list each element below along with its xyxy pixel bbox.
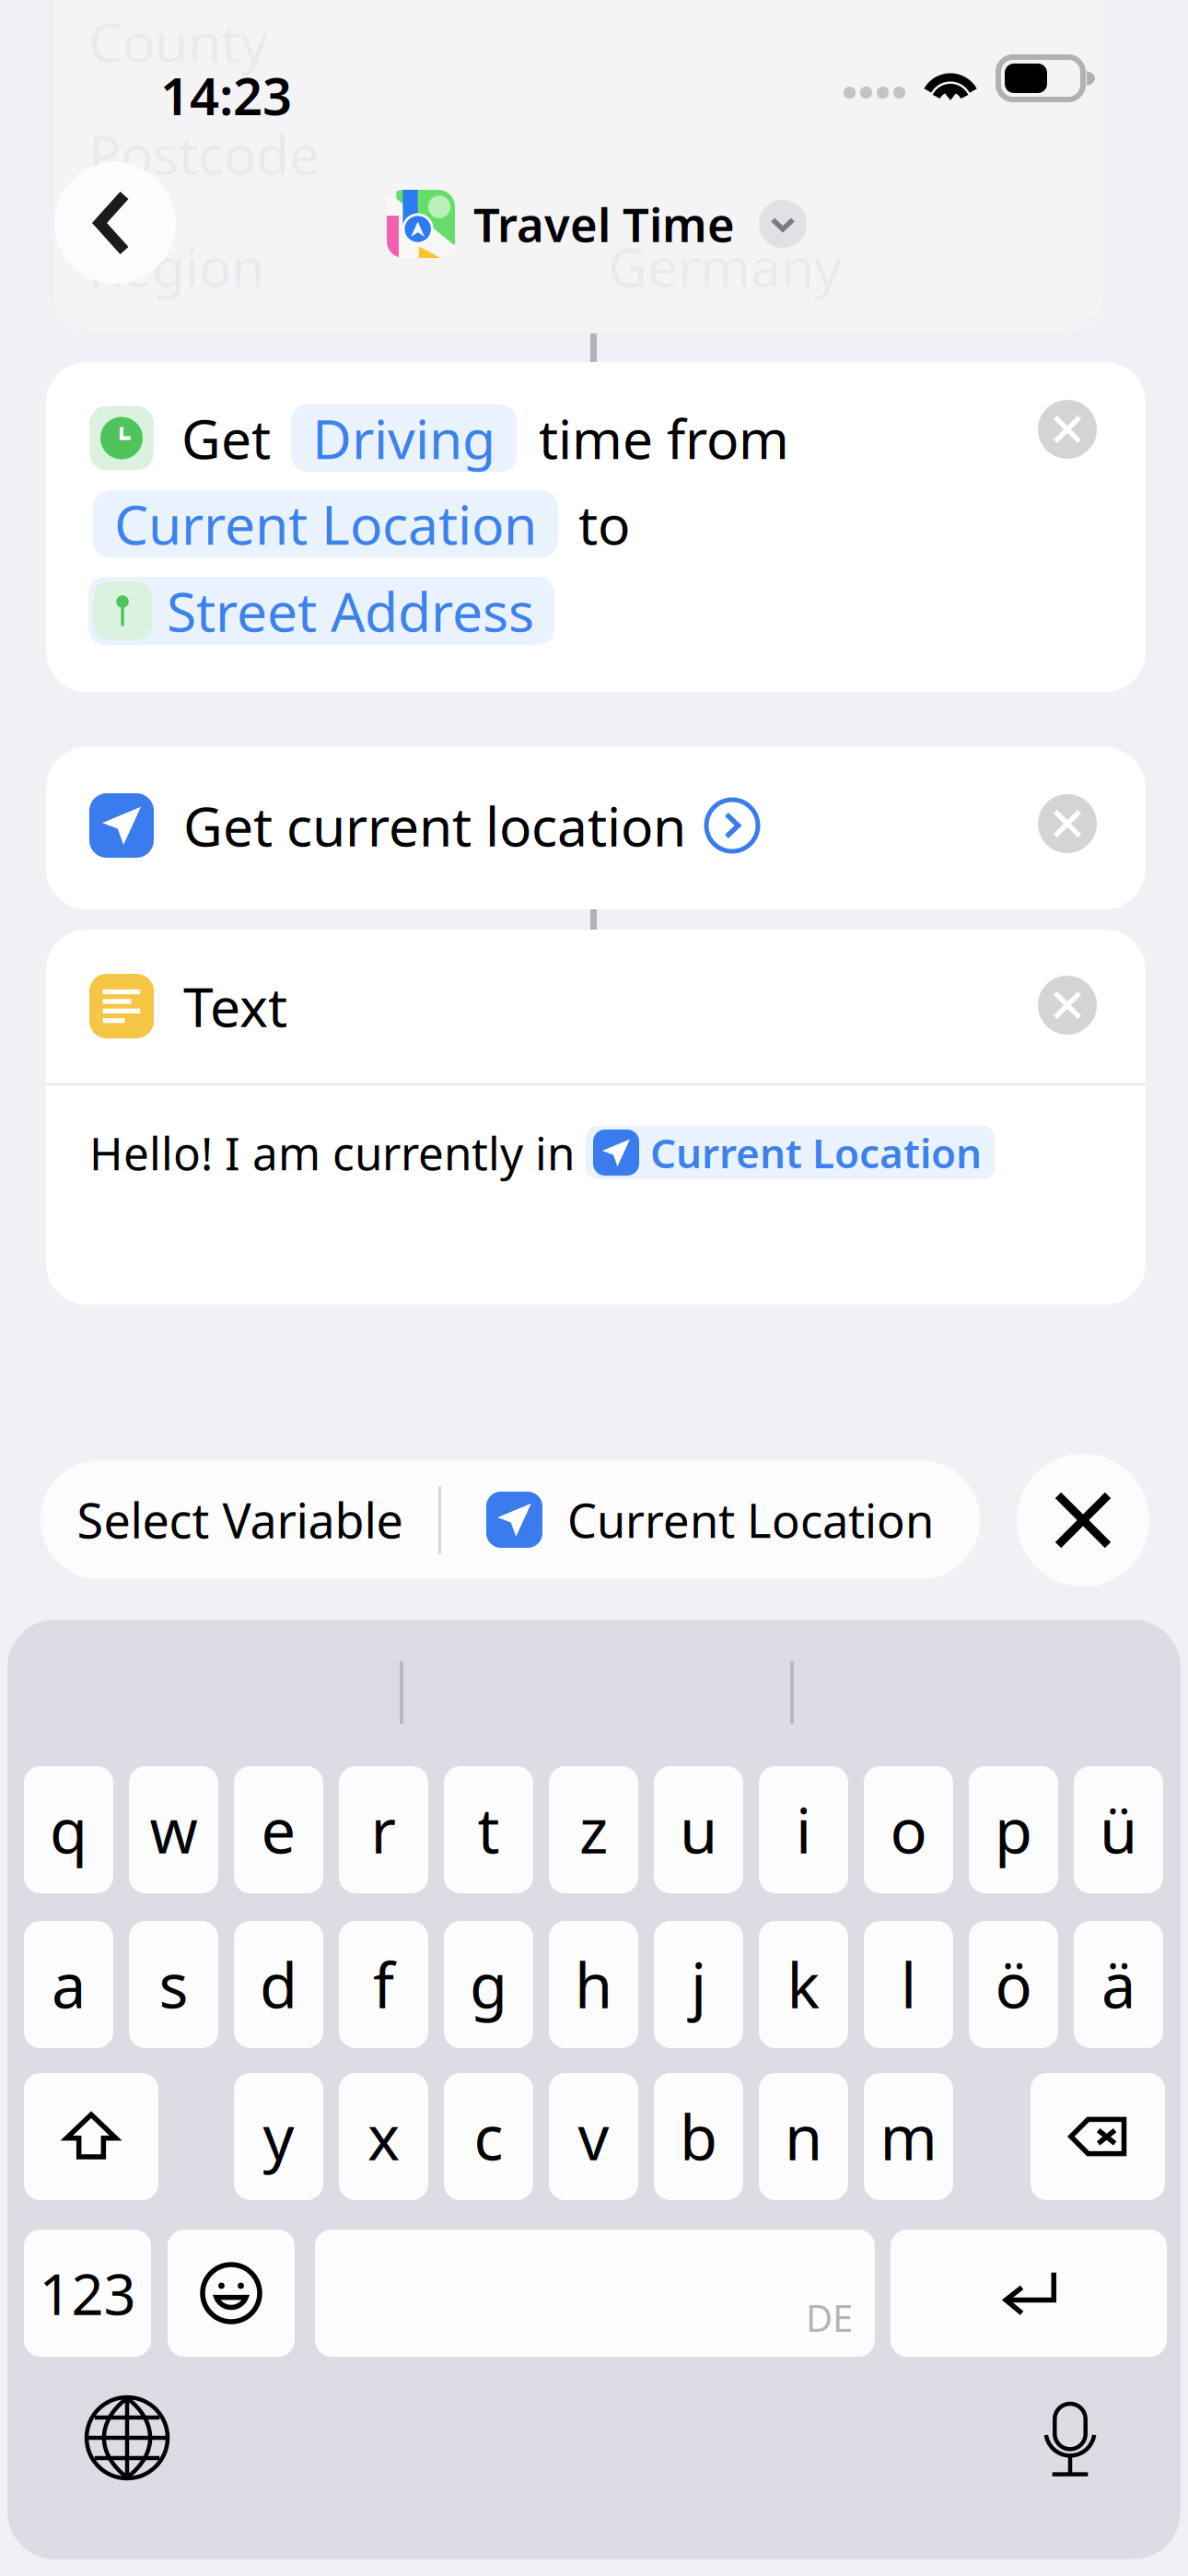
staticText: s — [159, 1944, 188, 2025]
staticText: r — [371, 1789, 396, 1870]
button[interactable]: Back — [54, 162, 176, 284]
button[interactable]: 123 — [24, 2230, 151, 2357]
button[interactable]: m — [864, 2073, 953, 2200]
button[interactable]: s — [129, 1921, 218, 2048]
staticText: Driving — [312, 402, 495, 474]
button[interactable]: Select Variable — [41, 1460, 439, 1579]
button[interactable]: Street Address — [88, 577, 554, 645]
button[interactable]: x — [339, 2073, 428, 2200]
staticText: w — [150, 1789, 198, 1870]
button[interactable]: Next keyboard — [81, 2392, 173, 2484]
button[interactable]: Shift — [24, 2073, 158, 2200]
staticText: z — [579, 1789, 608, 1870]
button[interactable]: Driving — [291, 404, 517, 472]
button[interactable]: b — [654, 2073, 743, 2200]
button[interactable]: Show action details — [706, 800, 758, 851]
staticText: ü — [1100, 1789, 1137, 1870]
staticText: u — [680, 1789, 717, 1870]
staticText: Current Location — [114, 488, 537, 560]
staticText: Get — [181, 402, 271, 474]
button[interactable]: j — [654, 1921, 743, 2048]
staticText: j — [691, 1944, 706, 2025]
button[interactable]: Dismiss keyboard — [1017, 1454, 1149, 1587]
staticText: 14:23 — [160, 61, 292, 129]
staticText: l — [901, 1944, 916, 2025]
button[interactable]: Dictate — [1024, 2392, 1116, 2484]
button[interactable]: ö — [969, 1921, 1058, 2048]
button[interactable]: r — [339, 1766, 428, 1893]
button[interactable]: Delete — [1031, 2073, 1165, 2200]
staticText: x — [367, 2096, 400, 2177]
button[interactable]: i — [759, 1766, 848, 1893]
staticText: to — [578, 488, 630, 560]
staticText: y — [263, 2096, 294, 2177]
staticText: Postcode — [88, 118, 320, 190]
button[interactable]: e — [234, 1766, 323, 1893]
button[interactable]: Remove Get current location action — [1038, 794, 1097, 853]
staticText: n — [785, 2096, 822, 2177]
staticText: time from — [539, 402, 789, 474]
button[interactable]: t — [444, 1766, 533, 1893]
button[interactable]: Space — [315, 2230, 875, 2357]
staticText: i — [796, 1789, 811, 1870]
staticText: Hello! I am currently in — [89, 1122, 575, 1183]
button[interactable]: Shortcut options — [759, 200, 807, 248]
staticText: k — [787, 1944, 820, 2025]
staticText: o — [890, 1789, 927, 1870]
button[interactable]: q — [24, 1766, 113, 1893]
staticText: Get current location — [183, 790, 686, 861]
staticText: ä — [1101, 1944, 1136, 2025]
staticText: v — [578, 2096, 609, 2177]
staticText: Text — [183, 970, 287, 1042]
staticText: d — [260, 1944, 297, 2025]
button[interactable]: Current Location — [93, 490, 558, 557]
button[interactable]: Remove Get travel time action — [1038, 400, 1097, 459]
staticText: c — [474, 2096, 503, 2177]
staticText: h — [575, 1944, 612, 2025]
staticText: m — [880, 2096, 937, 2177]
staticText: County — [88, 6, 268, 77]
staticText: t — [478, 1789, 500, 1870]
staticText: g — [470, 1944, 507, 2025]
staticText: Travel Time — [473, 193, 735, 255]
button[interactable]: ä — [1074, 1921, 1163, 2048]
button[interactable]: Remove Text action — [1038, 976, 1097, 1035]
button[interactable]: u — [654, 1766, 743, 1893]
button[interactable]: a — [24, 1921, 113, 2048]
button[interactable]: Emoji — [168, 2230, 295, 2357]
button[interactable]: k — [759, 1921, 848, 2048]
staticText: Germany — [608, 230, 842, 302]
button[interactable]: ü — [1074, 1766, 1163, 1893]
button[interactable]: d — [234, 1921, 323, 2048]
button[interactable]: g — [444, 1921, 533, 2048]
button[interactable]: n — [759, 2073, 848, 2200]
button[interactable]: l — [864, 1921, 953, 2048]
staticText: Select Variable — [77, 1488, 403, 1552]
staticText: b — [680, 2096, 717, 2177]
staticText: p — [995, 1789, 1032, 1870]
staticText: Street Address — [167, 575, 534, 647]
button[interactable]: y — [234, 2073, 323, 2200]
button[interactable]: f — [339, 1921, 428, 2048]
button[interactable]: c — [444, 2073, 533, 2200]
button[interactable]: z — [549, 1766, 638, 1893]
staticText: e — [261, 1789, 296, 1870]
staticText: DE — [806, 2293, 853, 2342]
button[interactable]: w — [129, 1766, 218, 1893]
button[interactable]: Current Location — [442, 1460, 981, 1579]
button[interactable]: o — [864, 1766, 953, 1893]
staticText: q — [50, 1789, 87, 1870]
staticText: Current Location — [650, 1126, 982, 1179]
button[interactable]: v — [549, 2073, 638, 2200]
button[interactable]: Return — [891, 2230, 1167, 2357]
button[interactable]: p — [969, 1766, 1058, 1893]
staticText: f — [373, 1944, 394, 2025]
staticText: a — [52, 1944, 86, 2025]
staticText: ö — [995, 1944, 1032, 2025]
staticText: 123 — [39, 2256, 136, 2331]
staticText: Region — [88, 230, 264, 302]
staticText: Current Location — [567, 1489, 934, 1551]
button[interactable]: h — [549, 1921, 638, 2048]
